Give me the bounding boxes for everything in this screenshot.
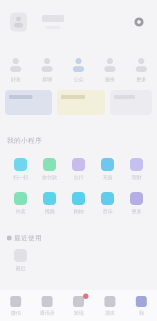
staticText: 微信 xyxy=(11,310,21,316)
button[interactable]: 朋友 xyxy=(94,289,126,321)
button[interactable]: 扫一扫 xyxy=(6,157,35,180)
button[interactable]: 外卖 xyxy=(6,191,35,214)
button[interactable]: 群聊 xyxy=(31,58,63,82)
staticText: 购物 xyxy=(73,208,83,215)
button[interactable]: 我 xyxy=(126,289,157,321)
staticText: 外卖 xyxy=(15,208,25,215)
button[interactable]: 好友 xyxy=(0,58,31,82)
button[interactable]: 充值 xyxy=(93,157,122,180)
button[interactable]: 发现 xyxy=(63,289,94,321)
staticText: 音乐 xyxy=(102,208,112,215)
button[interactable]: 最近 xyxy=(6,248,35,271)
button[interactable]: 出行 xyxy=(64,157,93,180)
staticText: 朋友 xyxy=(105,310,115,316)
button[interactable] xyxy=(5,90,52,115)
staticText: 更多 xyxy=(136,76,146,83)
button[interactable]: 通讯录 xyxy=(31,289,63,321)
staticText: 群聊 xyxy=(42,76,52,83)
button[interactable]: 理财 xyxy=(122,157,151,180)
button[interactable]: 收付款 xyxy=(35,157,64,180)
button[interactable]: 服务 xyxy=(94,58,126,82)
staticText: 出行 xyxy=(73,174,83,181)
button[interactable] xyxy=(57,90,105,115)
staticText: 充值 xyxy=(102,174,112,181)
staticText: 理财 xyxy=(131,174,141,181)
button[interactable]: 购物 xyxy=(64,191,93,214)
staticText: 通讯录 xyxy=(40,310,55,316)
staticText: 服务 xyxy=(105,76,115,83)
button[interactable]: 微信 xyxy=(0,289,31,321)
button[interactable] xyxy=(110,90,152,115)
staticText: 我的小程序 xyxy=(7,136,42,145)
staticText: 好友 xyxy=(11,76,21,83)
button[interactable]: Settings xyxy=(131,14,147,30)
staticText: 更多 xyxy=(131,208,141,215)
staticText: 发现 xyxy=(73,310,83,316)
button[interactable]: 视频 xyxy=(35,191,64,214)
staticText: 我 xyxy=(139,310,144,316)
staticText: 收付款 xyxy=(42,174,57,181)
staticText: 最近 xyxy=(15,265,25,272)
staticText: 最近使用 xyxy=(14,234,42,242)
button[interactable]: 更多 xyxy=(122,191,151,214)
button[interactable]: 公众 xyxy=(63,58,94,82)
staticText: 视频 xyxy=(44,208,54,215)
staticText: 公众 xyxy=(73,76,83,83)
button[interactable]: 音乐 xyxy=(93,191,122,214)
staticText: 扫一扫 xyxy=(13,174,28,181)
button[interactable]: 更多 xyxy=(126,58,157,82)
button[interactable] xyxy=(10,9,66,35)
